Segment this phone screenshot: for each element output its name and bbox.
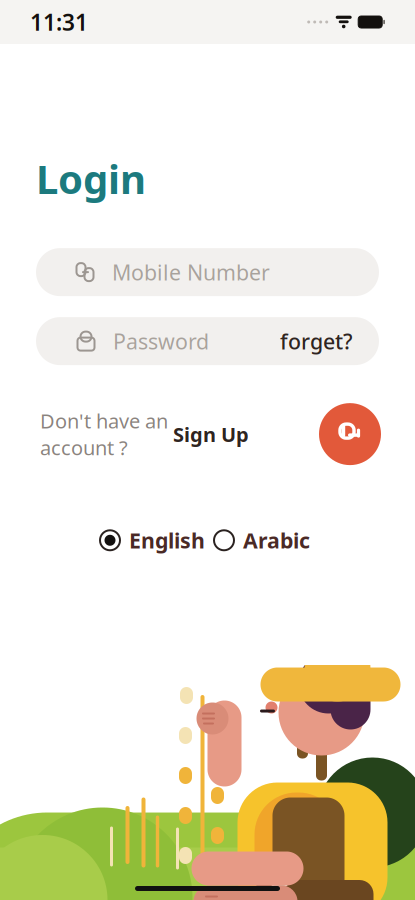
staticText: 11:31: [30, 7, 88, 37]
staticText: Password: [113, 327, 209, 355]
button[interactable]: Continue: [319, 403, 381, 465]
staticText: Arabic: [243, 526, 310, 554]
button[interactable]: Don't have an account ?: [40, 400, 249, 469]
button[interactable]: Password: [36, 317, 379, 365]
button[interactable]: Arabic: [214, 520, 310, 560]
staticText: Login: [36, 152, 146, 205]
staticText: Don't have an account ?: [40, 408, 168, 461]
staticText: Mobile Number: [112, 258, 270, 286]
button[interactable]: Mobile Number: [36, 248, 379, 296]
staticText: Sign Up: [173, 421, 249, 447]
staticText: English: [129, 526, 205, 554]
button[interactable]: English: [100, 520, 205, 560]
staticText: forget?: [280, 327, 353, 355]
